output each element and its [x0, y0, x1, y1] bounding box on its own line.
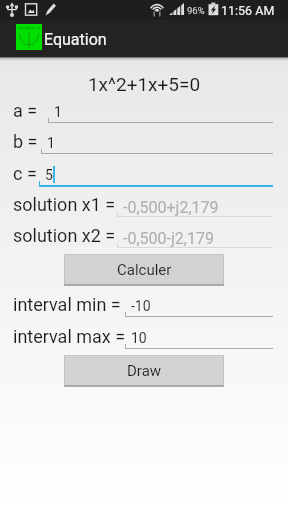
staticText: solution x2 = — [13, 225, 116, 246]
staticText: 1 — [54, 104, 62, 120]
staticText: -0,500+j2,179 — [123, 198, 219, 217]
staticText: 1 — [47, 135, 55, 151]
staticText: 96% — [187, 5, 205, 16]
button[interactable]: Calculer — [64, 254, 224, 286]
staticText: interval min = — [13, 294, 121, 315]
staticText: b = — [13, 131, 38, 152]
staticText: 1x^2+1x+5=0 — [0, 73, 288, 95]
staticText: -10 — [131, 298, 151, 314]
staticText: Draw — [127, 362, 162, 380]
staticText: 11:56 AM — [221, 3, 275, 18]
button[interactable]: Draw — [64, 355, 224, 387]
staticText: 10 — [131, 330, 147, 346]
staticText: ax²+bx+c=0 — [19, 25, 40, 30]
staticText: interval max = — [13, 326, 126, 347]
staticText: Calculer — [117, 261, 172, 279]
staticText: c = — [13, 163, 37, 184]
staticText: solution x1 = — [13, 194, 116, 215]
staticText: 5 — [45, 167, 53, 183]
staticText: a = — [13, 100, 38, 121]
staticText: Equation — [44, 30, 107, 49]
staticText: -0,500-j2,179 — [123, 229, 214, 248]
